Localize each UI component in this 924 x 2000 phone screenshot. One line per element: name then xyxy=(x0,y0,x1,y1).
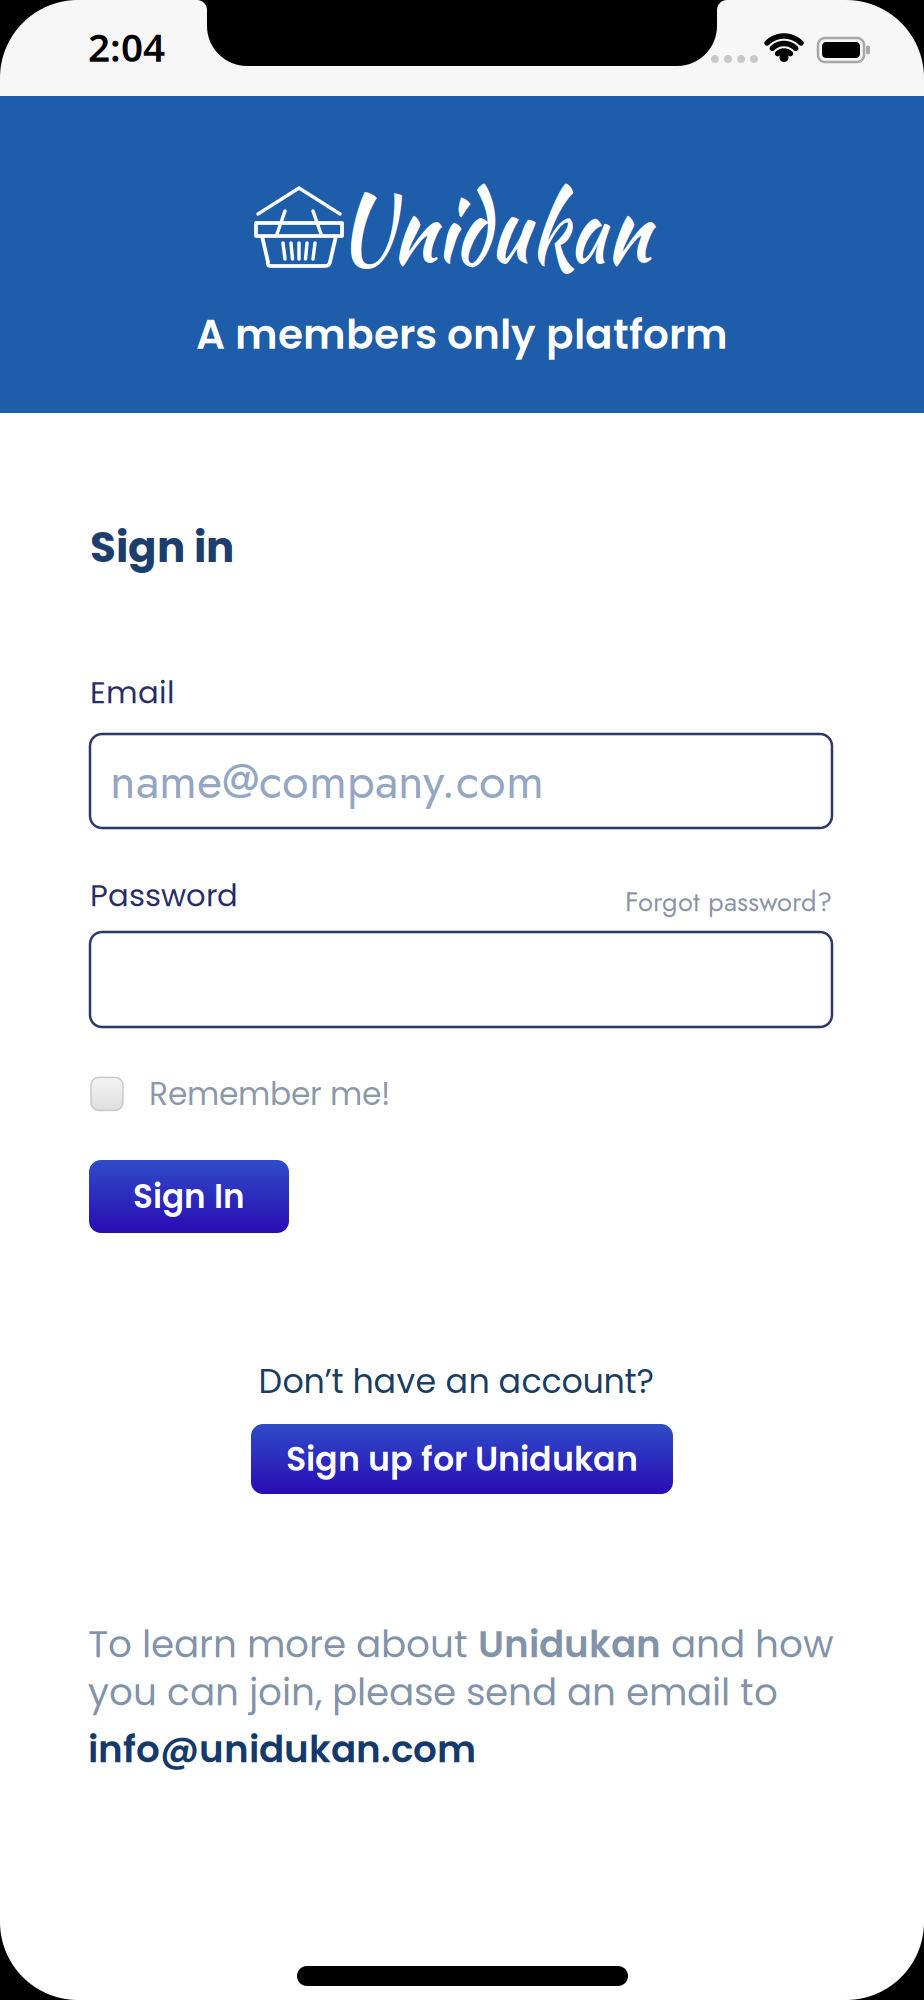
staticText: Unidukan xyxy=(338,170,650,286)
staticText: name@company.com xyxy=(110,746,544,816)
staticText: Don’t have an account? xyxy=(258,1358,653,1405)
button[interactable]: Forgot password? xyxy=(625,882,832,921)
button[interactable]: Sign In xyxy=(89,1160,289,1233)
staticText: To learn more about Unidukan and how xyxy=(88,1618,834,1670)
staticText: Email xyxy=(90,671,175,714)
staticText: A members only platform xyxy=(196,306,728,363)
staticText: Sign in xyxy=(90,518,234,577)
staticText: Sign up for Unidukan xyxy=(286,1436,638,1482)
staticText: Forgot password? xyxy=(625,882,832,921)
staticText: Remember me! xyxy=(149,1072,390,1116)
staticText: 2:04 xyxy=(88,21,165,72)
button[interactable]: Sign up for Unidukan xyxy=(251,1424,673,1494)
staticText: Sign In xyxy=(133,1174,245,1219)
staticText: Password xyxy=(90,874,238,917)
button[interactable]: Remember me! xyxy=(91,1072,390,1116)
button[interactable]: Password xyxy=(90,932,832,1027)
staticText: you can join, please send an email to xyxy=(88,1666,778,1718)
button[interactable]: name@company.com xyxy=(90,734,832,828)
staticText: info@unidukan.com xyxy=(88,1723,476,1775)
